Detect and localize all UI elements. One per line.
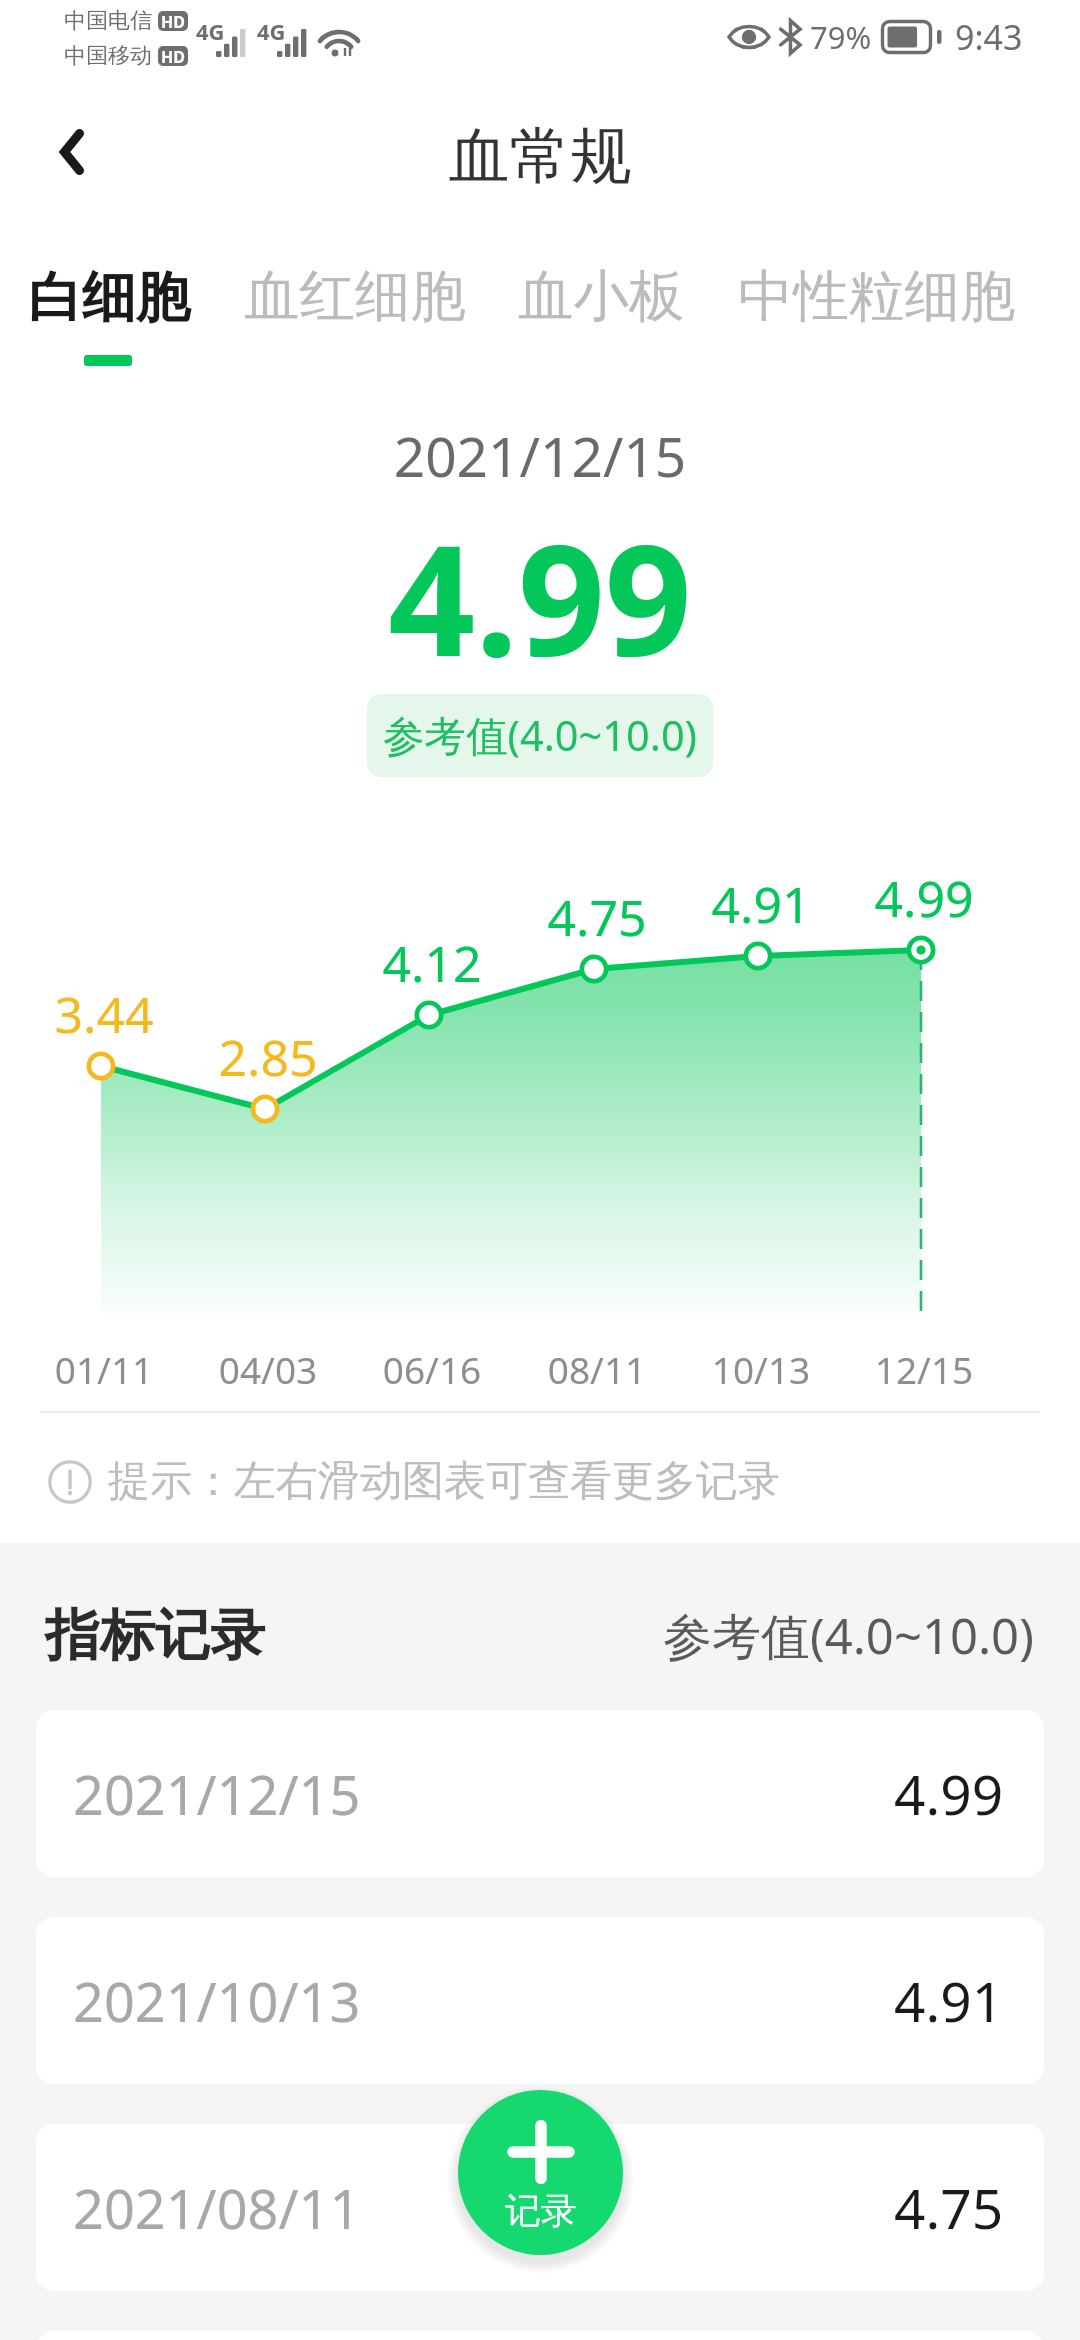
staticText: 2021/12/15 [73, 1757, 361, 1831]
staticText: 4.99 [894, 1756, 1004, 1831]
staticText: 血红细胞 [244, 262, 466, 332]
button[interactable]: 2021/12/15 [36, 1710, 1044, 1877]
staticText: 参考值(4.0~10.0) [383, 707, 698, 764]
staticText: HD [161, 11, 185, 31]
staticText: 中国电信 [64, 7, 152, 35]
staticText: 9:43 [955, 14, 1023, 60]
button[interactable]: 白细胞 [28, 264, 190, 332]
staticText: 4.99 [0, 494, 1080, 701]
staticText: 2021/10/13 [73, 1964, 361, 2038]
staticText: 04/03 [198, 1344, 338, 1394]
staticText: 白细胞 [28, 264, 190, 332]
staticText: 记录 [505, 2188, 577, 2233]
staticText: 4.91 [894, 1963, 1004, 2038]
staticText: 2021/08/11 [73, 2171, 361, 2245]
staticText: 参考值(4.0~10.0) [663, 1602, 1034, 1669]
button[interactable]: 血红细胞 [244, 262, 466, 332]
staticText: 中国移动 [64, 42, 152, 70]
staticText: HD [161, 46, 185, 66]
staticText: 2.85 [208, 1023, 328, 1091]
staticText: 4.91 [701, 870, 821, 938]
button[interactable]: 中性粒细胞 [738, 262, 1016, 332]
button[interactable]: 2021/08/11 [36, 2124, 1044, 2291]
staticText: 4G [196, 16, 225, 46]
staticText: 4G [257, 16, 286, 46]
button[interactable]: 添加记录 [458, 2090, 623, 2255]
staticText: 中性粒细胞 [738, 262, 1016, 332]
staticText: 79% [810, 16, 872, 58]
staticText: 4.75 [894, 2170, 1004, 2245]
staticText: 4.75 [537, 883, 657, 951]
staticText: 10/13 [691, 1344, 831, 1394]
staticText: 血常规 [0, 118, 1080, 195]
button[interactable]: 2021/10/13 [36, 1917, 1044, 2084]
staticText: 提示：左右滑动图表可查看更多记录 [108, 1455, 780, 1508]
staticText: 4.99 [864, 864, 984, 932]
staticText: 2021/12/15 [0, 418, 1080, 493]
staticText: 08/11 [527, 1344, 667, 1394]
staticText: 血小板 [518, 262, 685, 332]
button[interactable]: 血小板 [518, 262, 685, 332]
staticText: 3.44 [44, 980, 164, 1048]
staticText: 指标记录 [45, 1601, 265, 1670]
staticText: 4.12 [372, 929, 492, 997]
staticText: 12/15 [854, 1344, 994, 1394]
staticText: 06/16 [362, 1344, 502, 1394]
staticText: 01/11 [34, 1344, 174, 1394]
button[interactable]: 返回 [16, 96, 128, 208]
